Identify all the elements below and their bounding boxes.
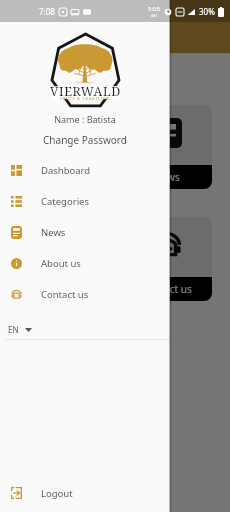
staticText: Dashboard: [38, 170, 90, 184]
staticText: About us: [43, 282, 85, 296]
button[interactable]: Dashboard: [0, 155, 170, 186]
staticText: Contact us: [142, 282, 192, 296]
staticText: News: [154, 170, 180, 184]
button[interactable]: Contact us: [121, 217, 212, 301]
staticText: EN: [8, 324, 19, 335]
staticText: About us: [41, 257, 81, 270]
button[interactable]: News: [0, 217, 170, 248]
staticText: 30%: [199, 6, 215, 17]
staticText: Contact us: [41, 288, 89, 301]
button[interactable]: About us: [18, 217, 109, 301]
staticText: Name : Batista: [0, 113, 170, 125]
staticText: Categories: [41, 195, 89, 208]
button[interactable]: Logout: [0, 478, 170, 509]
staticText: AM: [151, 13, 158, 18]
staticText: 7:08: [39, 6, 55, 17]
button[interactable]: Categories: [0, 186, 170, 217]
button[interactable]: EN: [0, 318, 170, 339]
staticText: VIERWALD: [50, 83, 121, 100]
button[interactable]: About us: [0, 248, 170, 279]
staticText: News: [41, 226, 66, 239]
button[interactable]: News: [121, 105, 212, 189]
staticText: Dashboard: [41, 164, 91, 177]
staticText: 5:05: [148, 5, 160, 13]
button[interactable]: Contact us: [0, 279, 170, 310]
button[interactable]: Dashboard: [18, 105, 109, 189]
staticText: TRUST & TRADITION: [60, 96, 111, 101]
button[interactable]: Change Password: [0, 133, 170, 147]
staticText: Logout: [41, 487, 73, 500]
